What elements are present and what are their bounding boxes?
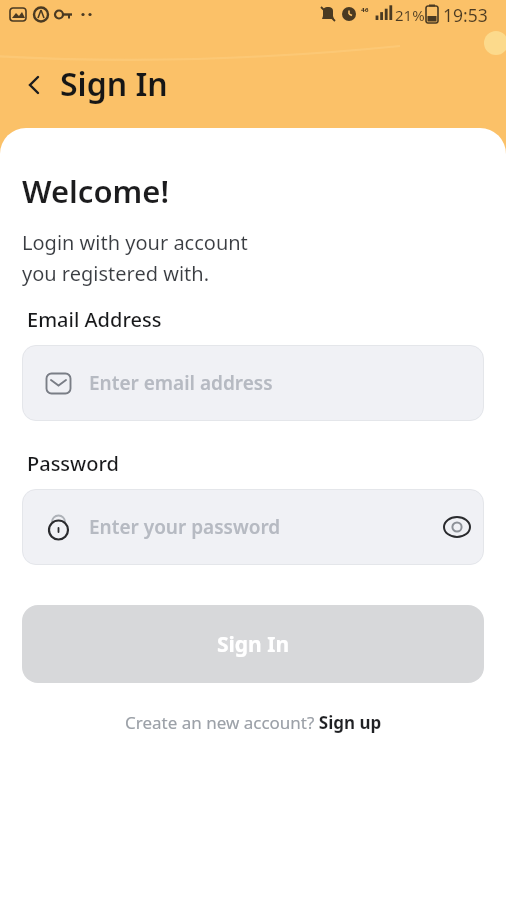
button[interactable]: Enter email address xyxy=(22,345,484,421)
staticText: 19:53 xyxy=(443,3,488,27)
button[interactable]: Enter your password xyxy=(22,489,484,565)
staticText: Create an new account? Sign up xyxy=(125,711,382,734)
button[interactable]: Sign In xyxy=(22,62,168,106)
staticText: Enter email address xyxy=(89,370,273,396)
staticText: Sign In xyxy=(60,62,168,106)
staticText: Sign In xyxy=(217,630,290,659)
button[interactable] xyxy=(442,512,472,542)
staticText: Password xyxy=(27,450,119,477)
button[interactable]: Create an new account? Sign up xyxy=(22,711,484,734)
staticText: 21% xyxy=(395,5,425,25)
staticText: ⁴⁶ xyxy=(361,5,369,19)
staticText: Enter your password xyxy=(89,514,281,540)
staticText: Login with your account you registered w… xyxy=(22,229,248,287)
button[interactable]: Sign In xyxy=(22,605,484,683)
staticText: Email Address xyxy=(27,306,162,333)
staticText: Welcome! xyxy=(22,170,170,212)
